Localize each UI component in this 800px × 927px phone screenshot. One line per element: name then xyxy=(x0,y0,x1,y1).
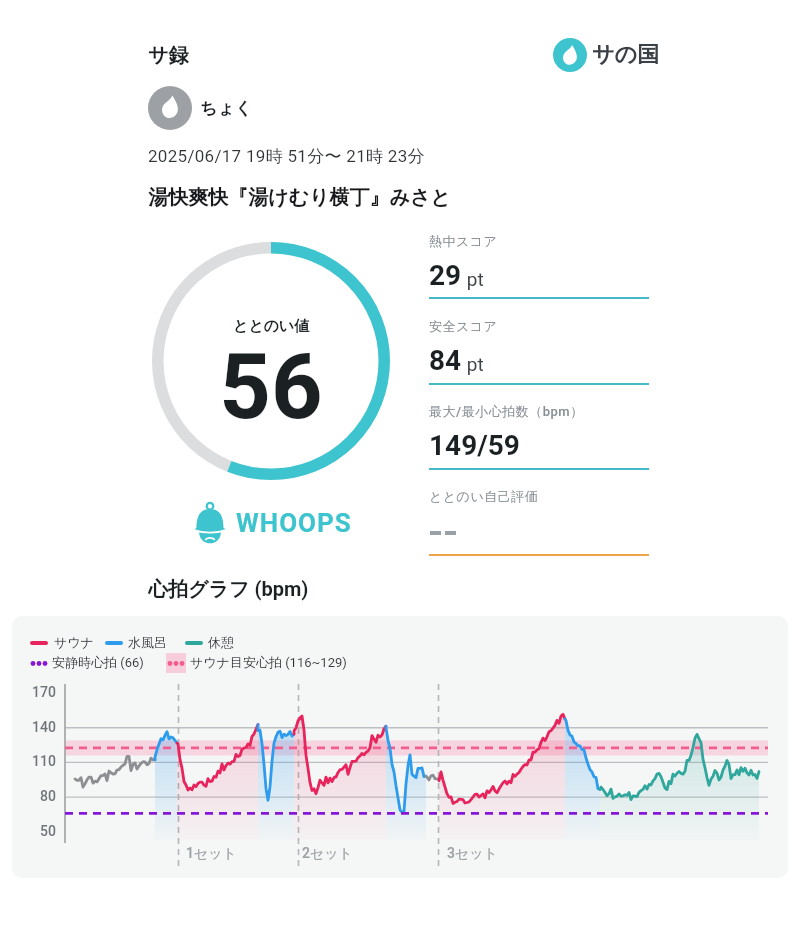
staticText: pt xyxy=(462,268,484,290)
staticText: 84 xyxy=(429,344,462,377)
staticText: サの国 xyxy=(592,41,660,69)
staticText: 2025/06/17 19時 51分〜 21時 23分 xyxy=(148,146,425,167)
button[interactable]: WHOOPS xyxy=(193,502,352,544)
staticText: 湯快爽快『湯けむり横丁』みさと xyxy=(148,185,451,210)
staticText: 80 xyxy=(40,788,56,804)
staticText: 安静時心拍 (66) xyxy=(52,654,144,670)
staticText: 最大/最小心拍数（bpm） xyxy=(429,403,584,419)
staticText: 心拍グラフ (bpm) xyxy=(148,577,309,602)
staticText: pt xyxy=(462,353,484,375)
staticText: サ録 xyxy=(148,43,189,68)
staticText: サウナ xyxy=(54,634,94,650)
staticText: 安全スコア xyxy=(429,318,498,334)
staticText: 1セット xyxy=(186,845,237,863)
staticText: サウナ目安心拍 (116~129) xyxy=(190,654,347,670)
staticText: 2セット xyxy=(302,845,353,863)
staticText: 熱中スコア xyxy=(429,233,498,249)
button[interactable]: ちょく xyxy=(148,86,253,130)
staticText: 水風呂 xyxy=(128,634,167,650)
staticText: 50 xyxy=(40,823,56,839)
staticText: 29 xyxy=(429,259,462,292)
staticText: 149/59 xyxy=(429,429,520,462)
staticText: 170 xyxy=(32,684,56,700)
staticText: ととのい自己評価 xyxy=(429,488,539,504)
staticText: 3セット xyxy=(447,845,498,863)
staticText: 休憩 xyxy=(208,634,234,650)
staticText: ちょく xyxy=(200,98,253,119)
button[interactable]: サの国 xyxy=(553,38,660,72)
staticText: WHOOPS xyxy=(236,508,352,538)
staticText: 110 xyxy=(32,753,56,769)
staticText: ととのい値 xyxy=(171,317,371,927)
staticText: 56 xyxy=(151,335,391,927)
staticText: 140 xyxy=(32,719,56,735)
